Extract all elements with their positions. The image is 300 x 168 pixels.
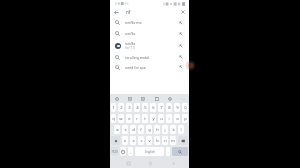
button[interactable]: s (122, 125, 128, 134)
staticText: w (119, 116, 123, 122)
staticText: o (176, 116, 179, 122)
button[interactable]: Google Lens (113, 95, 120, 102)
button[interactable]: t (142, 114, 148, 123)
button[interactable]: GIF (126, 95, 133, 102)
button[interactable]: n (162, 136, 168, 145)
button[interactable]: Back (169, 159, 177, 167)
button[interactable]: g (146, 125, 152, 134)
staticText: j (164, 127, 166, 133)
button[interactable]: scrolling mobil (110, 52, 189, 62)
button[interactable]: v (146, 136, 152, 145)
staticText: 7 (160, 105, 163, 111)
button[interactable]: 2 (118, 103, 124, 112)
button[interactable]: q (111, 114, 116, 123)
staticText: m (171, 138, 175, 144)
staticText: netflix (125, 31, 136, 36)
button[interactable]: . (166, 147, 170, 156)
button[interactable]: x (130, 136, 136, 145)
staticText: b (156, 138, 159, 144)
staticText: 6 (152, 105, 155, 111)
staticText: need for spe (125, 65, 146, 70)
staticText: n (164, 138, 167, 144)
button[interactable]: ?123 (111, 147, 118, 156)
staticText: a (116, 127, 119, 133)
button[interactable]: w (118, 114, 124, 123)
staticText: r (136, 116, 138, 122)
button[interactable]: 6 (150, 103, 156, 112)
button[interactable]: 9 (174, 103, 180, 112)
staticText: h (156, 127, 159, 133)
button[interactable]: j (162, 125, 168, 134)
button[interactable]: netflix mo (110, 17, 189, 28)
button[interactable]: , (128, 147, 133, 156)
staticText: 5 (144, 105, 147, 111)
button[interactable]: Shift (111, 136, 120, 145)
button[interactable]: Clear search (179, 8, 187, 16)
staticText: d (132, 127, 135, 133)
button[interactable]: m (170, 136, 176, 145)
staticText: c (140, 138, 143, 144)
button[interactable]: l (178, 125, 184, 134)
staticText: netflix (125, 41, 136, 46)
button[interactable]: i (166, 114, 172, 123)
staticText: e (128, 116, 131, 122)
button[interactable]: p (182, 114, 188, 123)
staticText: q (112, 116, 115, 122)
staticText: s (124, 127, 127, 133)
button[interactable]: Backspace (178, 136, 188, 145)
button[interactable]: Clipboard (153, 95, 160, 102)
button[interactable]: Settings (166, 95, 173, 102)
staticText: nf (126, 9, 131, 15)
staticText: f (140, 127, 142, 133)
staticText: netflix mo (125, 20, 142, 25)
button[interactable]: h (154, 125, 160, 134)
staticText: k (172, 127, 175, 133)
staticText: v (148, 138, 151, 144)
staticText: English (145, 150, 155, 154)
button[interactable]: 3 (126, 103, 132, 112)
button[interactable]: y (150, 114, 156, 123)
button[interactable]: Stickers (139, 95, 146, 102)
staticText: t (144, 116, 146, 122)
button[interactable]: r (134, 114, 140, 123)
button[interactable]: 7 (158, 103, 164, 112)
button[interactable]: Emoji (120, 147, 126, 156)
staticText: ?123 (111, 150, 118, 154)
staticText: x (132, 138, 135, 144)
button[interactable]: Back (113, 9, 120, 16)
button[interactable]: Home (146, 159, 154, 167)
button[interactable]: o (174, 114, 180, 123)
button[interactable]: Search (172, 147, 188, 156)
staticText: u (160, 116, 163, 122)
staticText: scrolling mobil (125, 55, 150, 60)
button[interactable]: netflix (110, 28, 189, 39)
staticText: y (152, 116, 155, 122)
staticText: , (130, 149, 132, 154)
button[interactable]: English (135, 147, 164, 156)
staticText: i (168, 116, 170, 122)
button[interactable]: 8 (166, 103, 172, 112)
button[interactable]: need for spe (110, 62, 189, 72)
staticText: 4 (136, 105, 139, 111)
button[interactable]: u (158, 114, 164, 123)
button[interactable]: c (138, 136, 144, 145)
button[interactable]: 1 (111, 103, 116, 112)
staticText: 8 (168, 105, 171, 111)
button[interactable]: d (130, 125, 136, 134)
button[interactable]: netflix (110, 39, 189, 52)
button[interactable]: k (170, 125, 176, 134)
button[interactable]: Recents (124, 159, 132, 167)
button[interactable]: z (122, 136, 128, 145)
button[interactable]: f (138, 125, 144, 134)
staticText: . (167, 149, 169, 154)
button[interactable]: 0 (182, 103, 188, 112)
staticText: g (148, 127, 151, 133)
button[interactable]: e (126, 114, 132, 123)
button[interactable]: 5 (142, 103, 148, 112)
button[interactable]: 4 (134, 103, 140, 112)
staticText: 2 (120, 105, 123, 111)
button[interactable]: b (154, 136, 160, 145)
button[interactable]: a (114, 125, 120, 134)
staticText: l (180, 127, 182, 133)
